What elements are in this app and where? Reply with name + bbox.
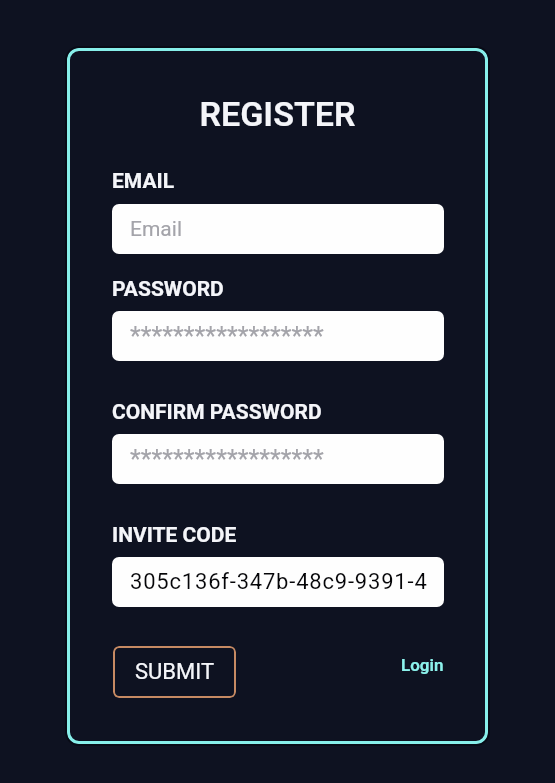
button[interactable]: ****************** (112, 311, 444, 361)
staticText: Email (130, 217, 182, 242)
staticText: INVITE CODE (112, 523, 237, 548)
button[interactable]: 305c136f-347b-48c9-9391-4 (112, 557, 444, 607)
staticText: ****************** (130, 322, 324, 351)
staticText: CONFIRM PASSWORD (112, 400, 322, 425)
staticText: Login (401, 655, 444, 675)
button[interactable]: ****************** (112, 434, 444, 484)
staticText: PASSWORD (112, 277, 224, 302)
button[interactable]: Login (391, 647, 454, 683)
staticText: ****************** (130, 445, 324, 474)
staticText: EMAIL (112, 169, 174, 194)
staticText: REGISTER (67, 94, 488, 134)
staticText: SUBMIT (135, 659, 215, 685)
button[interactable]: SUBMIT (113, 646, 236, 698)
staticText: 305c136f-347b-48c9-9391-4 (130, 569, 428, 595)
button[interactable]: Email (112, 204, 444, 254)
